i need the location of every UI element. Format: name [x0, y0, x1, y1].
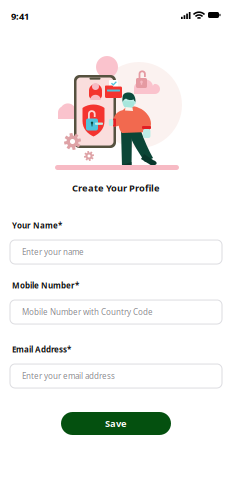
staticText: Mobile Number with Country Code	[22, 307, 153, 317]
staticText: Save	[105, 417, 127, 430]
button[interactable]: Enter your email address	[10, 364, 222, 388]
button[interactable]: Mobile Number with Country Code	[10, 300, 222, 324]
staticText: Enter your name	[22, 247, 84, 257]
staticText: Email Address*	[12, 344, 71, 355]
staticText: Your Name*	[12, 220, 62, 231]
staticText: Create Your Profile	[72, 182, 160, 194]
staticText: Mobile Number*	[12, 280, 79, 291]
staticText: 9:41	[11, 10, 29, 22]
button[interactable]: Save	[61, 412, 171, 435]
button[interactable]: Enter your name	[10, 240, 222, 264]
staticText: Enter your email address	[22, 371, 115, 381]
